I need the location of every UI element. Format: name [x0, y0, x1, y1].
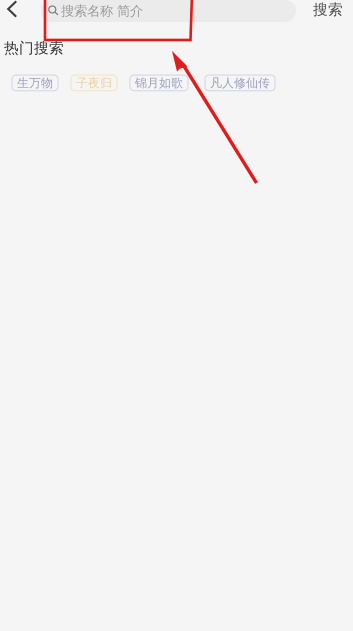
button[interactable]: Back: [0, 0, 41, 22]
staticText: 搜索: [313, 0, 343, 18]
button[interactable]: 子夜归: [71, 75, 117, 91]
staticText: 搜索名称 简介: [61, 3, 143, 19]
staticText: 热门搜索: [4, 39, 64, 57]
staticText: 凡人修仙传: [210, 75, 270, 90]
button[interactable]: 凡人修仙传: [205, 75, 275, 91]
staticText: 锦月如歌: [135, 75, 183, 90]
staticText: 子夜归: [76, 75, 112, 90]
button[interactable]: 生万物: [12, 75, 58, 91]
button[interactable]: 锦月如歌: [130, 75, 188, 91]
staticText: 生万物: [17, 75, 53, 90]
button[interactable]: 搜索: [303, 0, 353, 22]
button[interactable]: 搜索名称 简介: [41, 0, 296, 22]
